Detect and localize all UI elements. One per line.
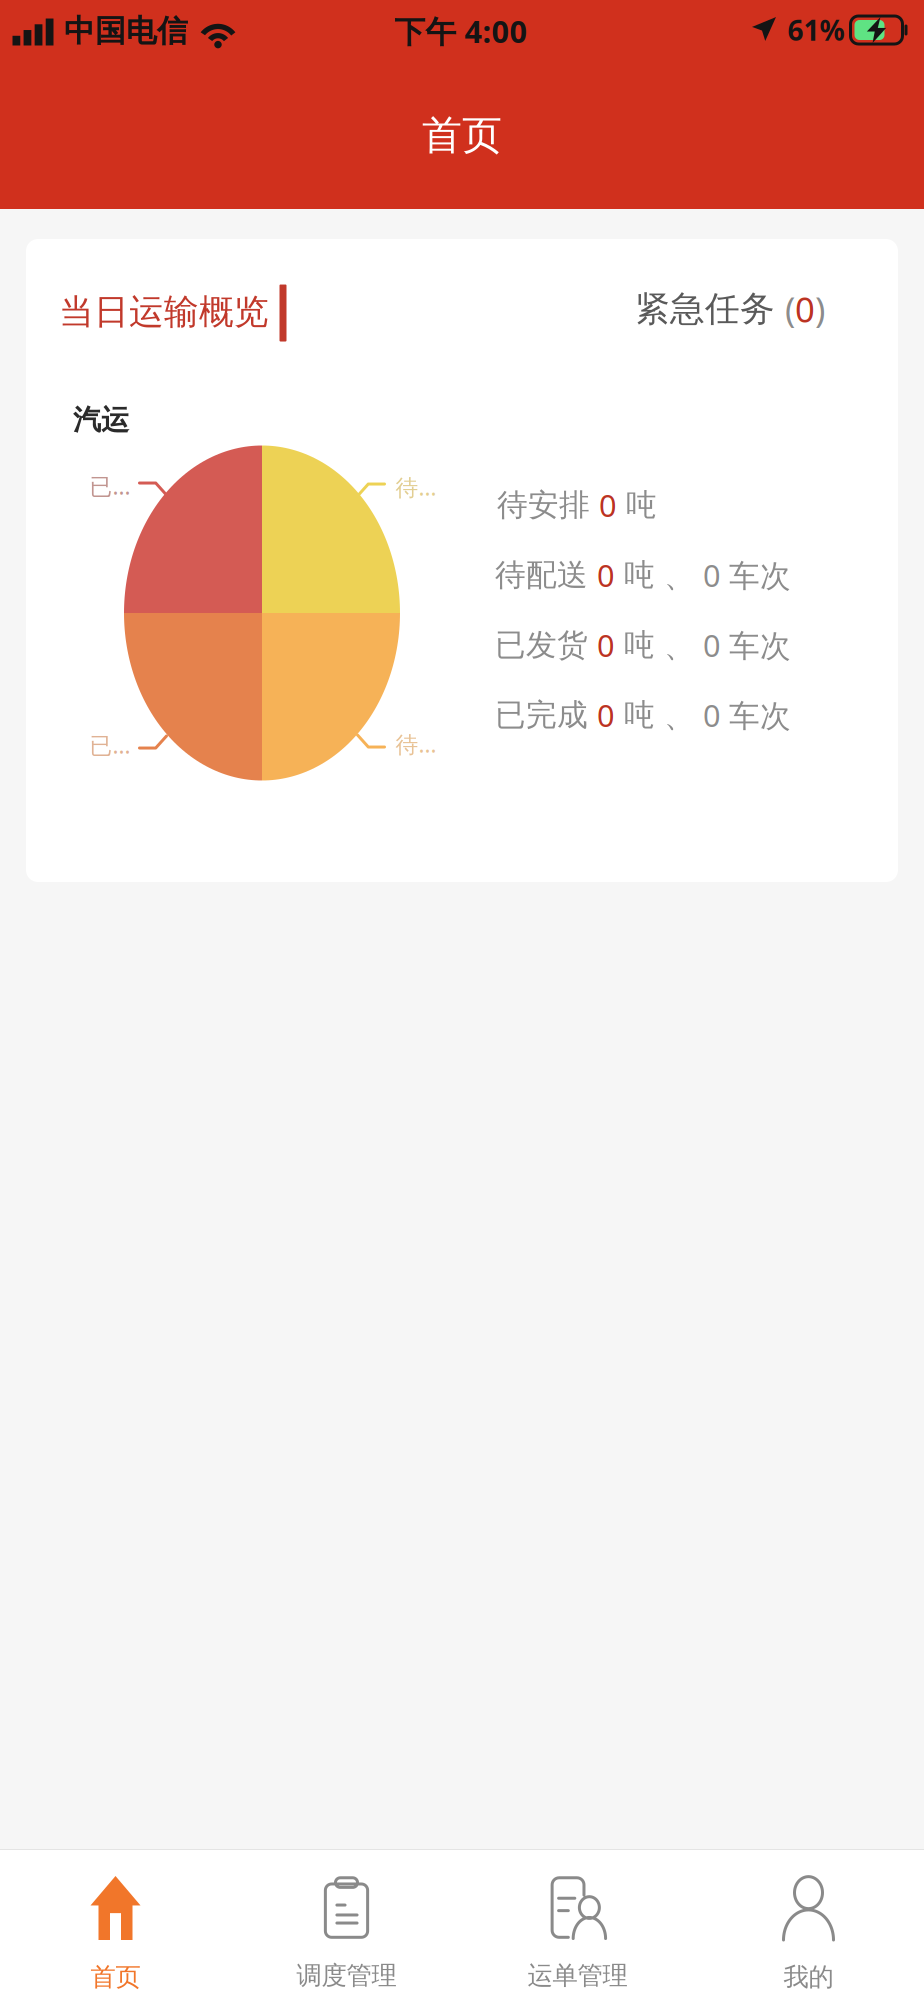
button[interactable]: 我的 — [693, 1850, 924, 2000]
staticText: 下午 4:00 — [394, 10, 527, 52]
staticText: 、 0 车次 — [655, 694, 791, 736]
staticText: 吨 — [615, 556, 655, 594]
staticText: 已... — [89, 471, 130, 501]
staticText: 0 — [597, 554, 615, 596]
staticText: 待... — [395, 729, 436, 759]
staticText: 0 — [597, 624, 615, 666]
staticText: 61% — [787, 11, 844, 49]
staticText: 紧急任务 — [635, 287, 785, 331]
staticText: 待安排 — [497, 486, 599, 524]
staticText: 吨 — [617, 486, 657, 524]
staticText: 调度管理 — [296, 1959, 396, 1991]
staticText: 、 0 车次 — [655, 624, 791, 666]
staticText: 首页 — [422, 110, 502, 161]
staticText: ( — [785, 285, 795, 333]
staticText: 0 — [597, 694, 615, 736]
staticText: 已... — [89, 730, 130, 760]
button[interactable]: 运单管理 — [462, 1850, 693, 2000]
staticText: 待配送 — [495, 556, 597, 594]
staticText: 吨 — [615, 626, 655, 664]
staticText: 0 — [599, 484, 617, 526]
staticText: 已发货 — [495, 626, 597, 664]
staticText: 运单管理 — [527, 1959, 627, 1991]
staticText: 、 0 车次 — [655, 554, 791, 596]
staticText: 首页 — [90, 1961, 140, 1993]
staticText: 待... — [395, 472, 436, 502]
staticText: 当日运输概览 — [59, 290, 269, 334]
staticText: ) — [815, 285, 825, 333]
staticText: 汽运 — [73, 402, 129, 438]
button[interactable]: 调度管理 — [231, 1850, 462, 2000]
staticText: 吨 — [615, 696, 655, 734]
button[interactable]: 首页 — [0, 1850, 231, 2000]
staticText: 中国电信 — [64, 12, 188, 50]
staticText: 0 — [795, 285, 815, 333]
staticText: 我的 — [783, 1961, 833, 1993]
staticText: 已完成 — [495, 696, 597, 734]
